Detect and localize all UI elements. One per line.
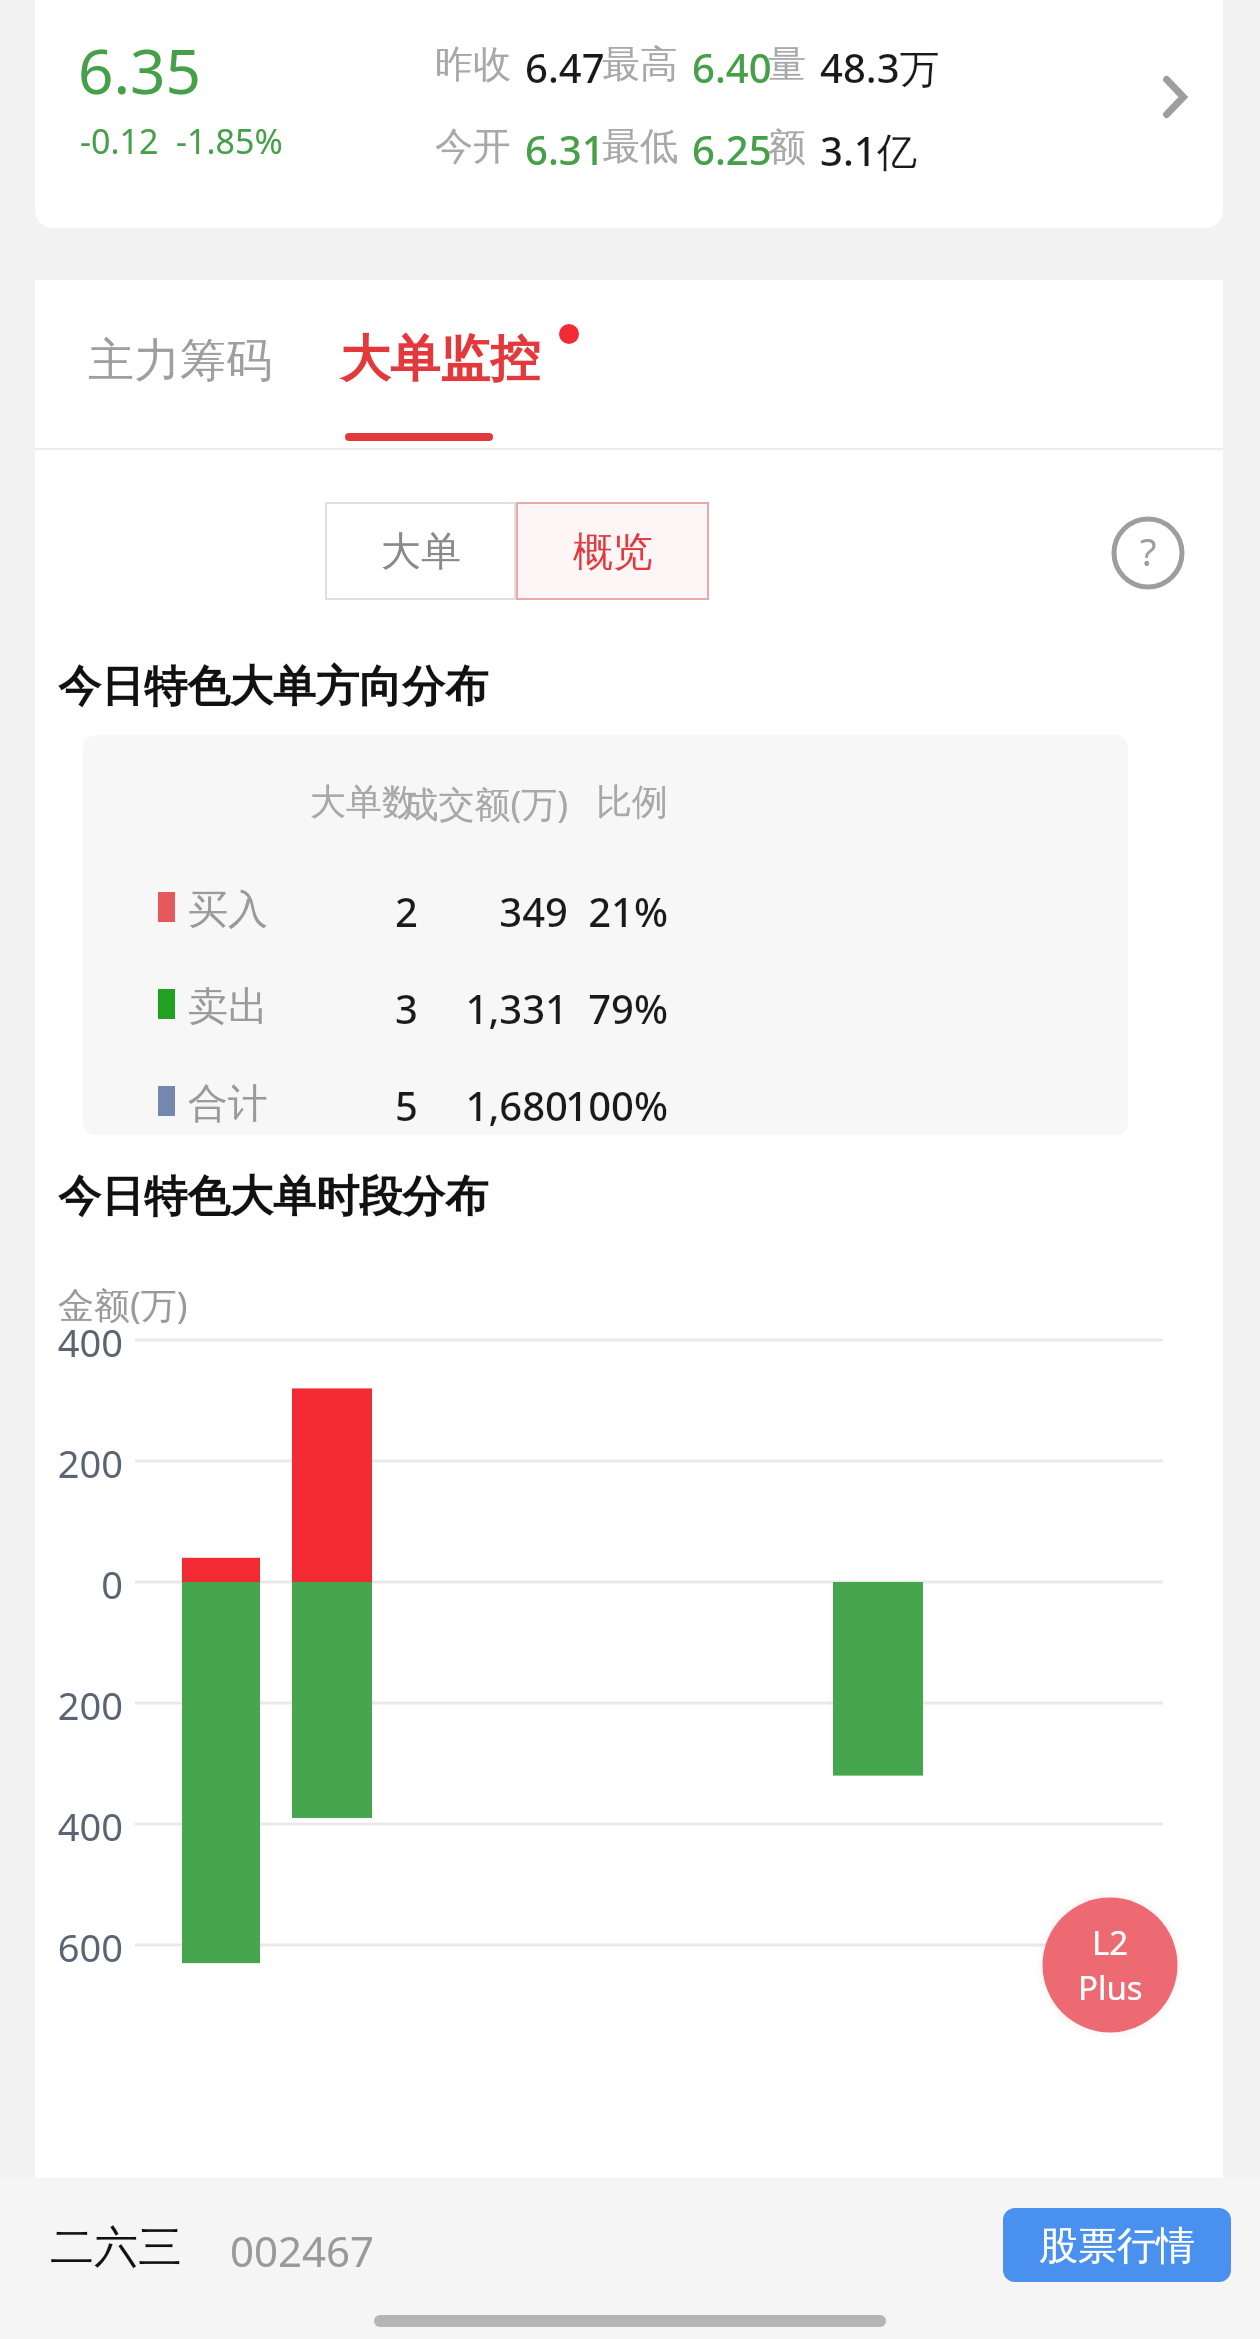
staticText: 大单监控 [340, 328, 540, 391]
staticText: 79% [538, 981, 668, 1035]
staticText: Plus [1078, 1965, 1143, 2010]
staticText: 金额(万) [58, 1280, 188, 1329]
staticText: 21% [538, 884, 668, 938]
staticText: 400 [35, 1800, 123, 1852]
staticText: 成交额(万) [383, 779, 568, 828]
staticText: 6.35 [78, 28, 202, 112]
staticText: L2 [1092, 1920, 1129, 1965]
button[interactable]: 大单 [325, 502, 516, 600]
button[interactable]: 概览 [516, 502, 709, 600]
button[interactable]: 买入 [83, 872, 1128, 944]
staticText: 合计 [188, 1078, 268, 1128]
staticText: 最低 [602, 122, 678, 170]
staticText: ? [1140, 525, 1157, 577]
staticText: 200 [35, 1437, 123, 1489]
button[interactable]: 合计 [83, 1066, 1128, 1135]
staticText: 400 [35, 1316, 123, 1368]
staticText: 6.47 [525, 40, 605, 94]
button[interactable]: Details [1140, 62, 1210, 132]
staticText: 3.1亿 [820, 123, 917, 178]
staticText: 1,331 [383, 981, 568, 1035]
staticText: 100% [538, 1078, 668, 1132]
staticText: 0 [35, 1558, 123, 1610]
staticText: 今开 [435, 122, 511, 170]
staticText: 大单 [381, 526, 461, 576]
staticText: 1,680 [383, 1078, 568, 1132]
staticText: 额 [768, 123, 806, 171]
button[interactable]: 主力筹码 [88, 332, 272, 390]
staticText: 二六三 [50, 2220, 182, 2275]
button[interactable]: Help [1113, 518, 1183, 588]
button[interactable]: 卖出 [83, 969, 1128, 1041]
staticText: 600 [35, 1921, 123, 1973]
staticText: 量 [768, 40, 806, 88]
staticText: 最高 [602, 40, 678, 88]
staticText: 3 [268, 981, 418, 1035]
button[interactable]: 大单监控 [340, 328, 540, 391]
staticText: 股票行情 [1039, 2221, 1195, 2270]
staticText: 6.25 [692, 122, 772, 176]
staticText: 比例 [538, 779, 668, 824]
staticText: 买入 [188, 884, 268, 934]
staticText: 昨收 [435, 40, 511, 88]
staticText: 5 [268, 1078, 418, 1132]
button[interactable] [35, 0, 1223, 228]
staticText: 今日特色大单方向分布 [58, 660, 488, 714]
staticText: 002467 [230, 2222, 375, 2279]
staticText: 200 [35, 1679, 123, 1731]
button[interactable]: L2 [1035, 1890, 1185, 2040]
staticText: 6.40 [692, 40, 772, 94]
staticText: 大单数 [268, 779, 418, 824]
staticText: 2 [268, 884, 418, 938]
button[interactable]: 股票行情 [1003, 2208, 1231, 2282]
staticText: 今日特色大单时段分布 [58, 1170, 488, 1224]
staticText: 349 [383, 884, 568, 938]
staticText: -0.12 -1.85% [80, 118, 283, 164]
staticText: 概览 [573, 526, 653, 576]
staticText: 48.3万 [820, 40, 940, 95]
staticText: 卖出 [188, 981, 268, 1031]
staticText: 6.31 [525, 122, 605, 176]
